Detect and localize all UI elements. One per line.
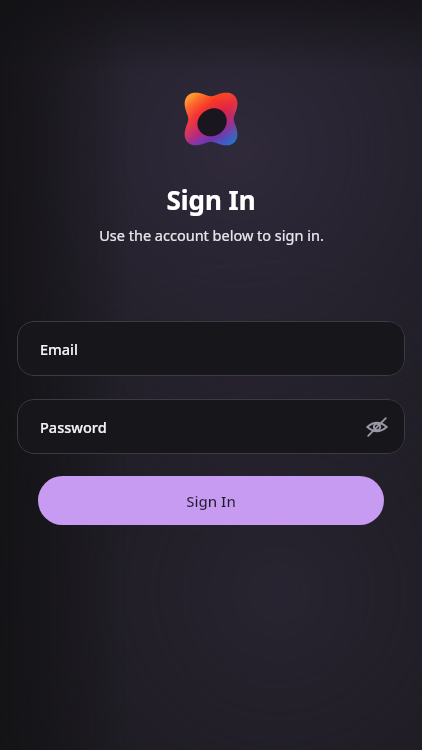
button[interactable]: Email xyxy=(17,321,405,376)
button[interactable]: Show password xyxy=(357,407,397,447)
button[interactable]: Sign In xyxy=(38,476,384,525)
staticText: Sign In xyxy=(186,491,236,511)
staticText: Use the account below to sign in. xyxy=(99,225,324,245)
button[interactable]: Password xyxy=(17,399,405,454)
staticText: Email xyxy=(40,339,78,359)
staticText: Sign In xyxy=(166,182,256,217)
staticText: Password xyxy=(40,417,107,437)
